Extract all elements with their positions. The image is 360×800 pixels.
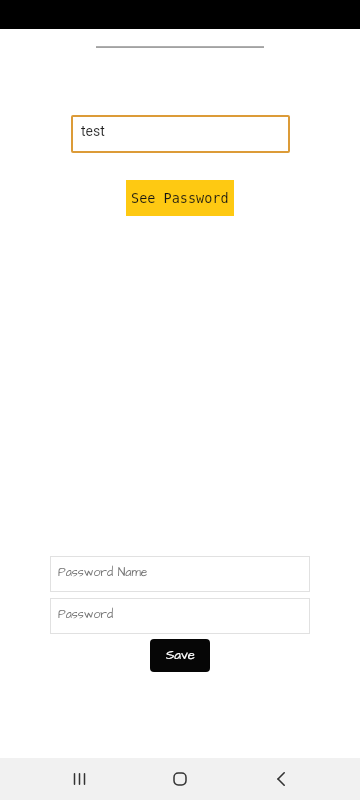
button[interactable]: Password bbox=[50, 598, 310, 634]
staticText: Password bbox=[58, 606, 114, 623]
button[interactable]: Save bbox=[150, 639, 210, 672]
button[interactable]: See Password bbox=[126, 180, 234, 216]
button[interactable]: Home bbox=[149, 758, 211, 800]
staticText: test bbox=[81, 123, 105, 139]
button[interactable]: test bbox=[71, 115, 290, 153]
staticText: Password Name bbox=[58, 564, 148, 581]
button[interactable]: Back bbox=[250, 758, 312, 800]
button[interactable]: Recent apps bbox=[48, 758, 110, 800]
staticText: Save bbox=[166, 646, 195, 664]
staticText: See Password bbox=[131, 190, 229, 206]
button[interactable]: Password Name bbox=[50, 556, 310, 592]
